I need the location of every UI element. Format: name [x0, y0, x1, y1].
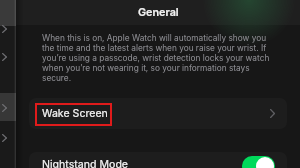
staticText: When this is on, Apple Watch will automa… — [42, 33, 267, 43]
button[interactable]: Nightstand Mode on — [242, 156, 275, 168]
staticText: Wake Screen — [42, 107, 108, 120]
button[interactable]: Nightstand Mode — [29, 152, 287, 168]
staticText: General — [138, 6, 179, 19]
staticText: secure. — [42, 73, 72, 83]
button[interactable]: Wake Screen — [29, 98, 287, 129]
staticText: you’re using a passcode, wrist detection… — [42, 53, 270, 63]
staticText: the time and the latest alerts when you … — [42, 43, 267, 53]
staticText: Nightstand Mode — [42, 158, 129, 168]
staticText: when you’re not wearing it, so your info… — [42, 63, 250, 73]
